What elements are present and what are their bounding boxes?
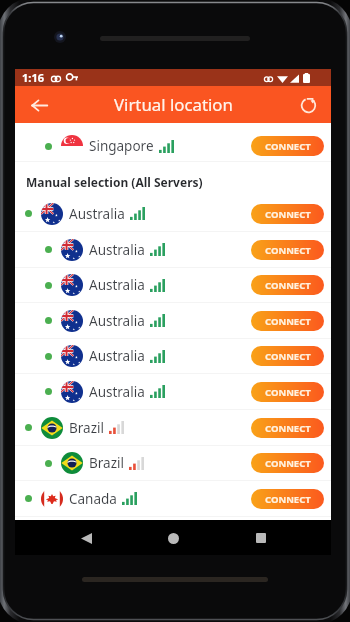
button[interactable]: CONNECT	[251, 346, 324, 366]
staticText: CONNECT	[265, 350, 311, 363]
button[interactable]: Back	[69, 521, 103, 555]
button[interactable]: Australia	[15, 268, 331, 302]
button[interactable]: Australia	[15, 303, 331, 338]
staticText: Singapore	[89, 137, 154, 155]
button[interactable]: CONNECT	[251, 311, 324, 331]
staticText: Australia	[89, 347, 145, 365]
staticText: Australia	[89, 276, 145, 294]
staticText: CONNECT	[265, 493, 311, 506]
button[interactable]: CONNECT	[251, 240, 324, 260]
staticText: 1:16	[22, 70, 44, 85]
staticText: CONNECT	[265, 208, 311, 221]
button[interactable]: CONNECT	[251, 136, 324, 156]
button[interactable]: Canada	[15, 481, 331, 516]
button[interactable]: Back	[23, 89, 55, 121]
button[interactable]: Singapore	[15, 123, 331, 161]
staticText: CONNECT	[265, 422, 311, 435]
button[interactable]: CONNECT	[251, 453, 324, 473]
button[interactable]: Brazil	[15, 446, 331, 480]
staticText: Australia	[89, 312, 145, 330]
button[interactable]: Australia	[15, 232, 331, 267]
button[interactable]: Home	[156, 521, 190, 555]
button[interactable]: Refresh	[293, 90, 323, 120]
button[interactable]: CONNECT	[251, 489, 324, 509]
staticText: Australia	[89, 383, 145, 401]
button[interactable]: Australia	[15, 339, 331, 373]
staticText: Australia	[89, 241, 145, 259]
staticText: Canada	[69, 490, 117, 508]
button[interactable]: CONNECT	[251, 418, 324, 438]
button[interactable]: CONNECT	[251, 275, 324, 295]
staticText: CONNECT	[265, 279, 311, 292]
staticText: CONNECT	[265, 457, 311, 470]
staticText: Manual selection (All Servers)	[26, 174, 203, 190]
staticText: Virtual location	[114, 93, 233, 116]
button[interactable]: Australia	[15, 374, 331, 409]
button[interactable]: Australia	[15, 196, 331, 231]
staticText: CONNECT	[265, 244, 311, 257]
button[interactable]: CONNECT	[251, 382, 324, 402]
staticText: CONNECT	[265, 140, 311, 153]
staticText: CONNECT	[265, 386, 311, 399]
staticText: Brazil	[89, 454, 124, 472]
staticText: CONNECT	[265, 315, 311, 328]
button[interactable]: Recents	[244, 521, 278, 555]
button[interactable]: CONNECT	[251, 204, 324, 224]
button[interactable]: Brazil	[15, 410, 331, 445]
staticText: Australia	[69, 205, 125, 223]
staticText: Brazil	[69, 419, 104, 437]
